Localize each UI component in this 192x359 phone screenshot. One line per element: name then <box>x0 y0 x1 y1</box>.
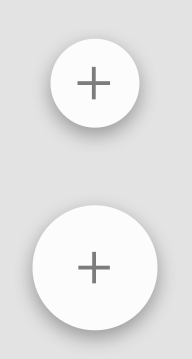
button[interactable]: Add <box>50 39 139 128</box>
button[interactable]: Add <box>32 205 157 330</box>
